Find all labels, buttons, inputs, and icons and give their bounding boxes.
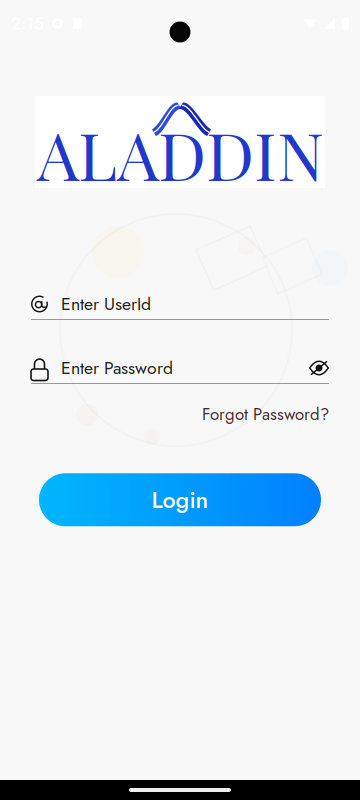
button[interactable]: Login (39, 473, 321, 526)
staticText: ALADDIN (37, 109, 324, 197)
staticText: Login (151, 483, 208, 517)
button[interactable]: Show password (299, 356, 329, 380)
staticText: Forgot Password? (202, 402, 329, 426)
staticText: Enter UserId (61, 291, 151, 317)
staticText: Enter Password (61, 355, 173, 381)
button[interactable]: Forgot Password? (202, 402, 329, 426)
button[interactable]: Enter UserId (31, 289, 329, 320)
